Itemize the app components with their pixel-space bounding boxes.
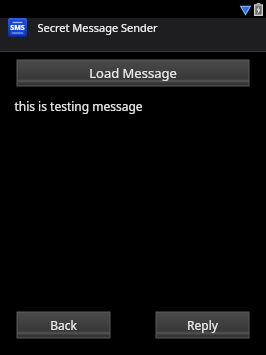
- staticText: Load Message: [89, 64, 177, 82]
- button[interactable]: Load Message: [17, 60, 249, 86]
- staticText: this is testing message: [14, 98, 143, 114]
- staticText: Secret Message Sender: [37, 20, 158, 35]
- button[interactable]: Back: [17, 312, 110, 338]
- button[interactable]: Reply: [156, 312, 249, 338]
- staticText: Reply: [187, 317, 218, 333]
- staticText: SMS: [10, 23, 25, 33]
- staticText: Back: [50, 317, 77, 333]
